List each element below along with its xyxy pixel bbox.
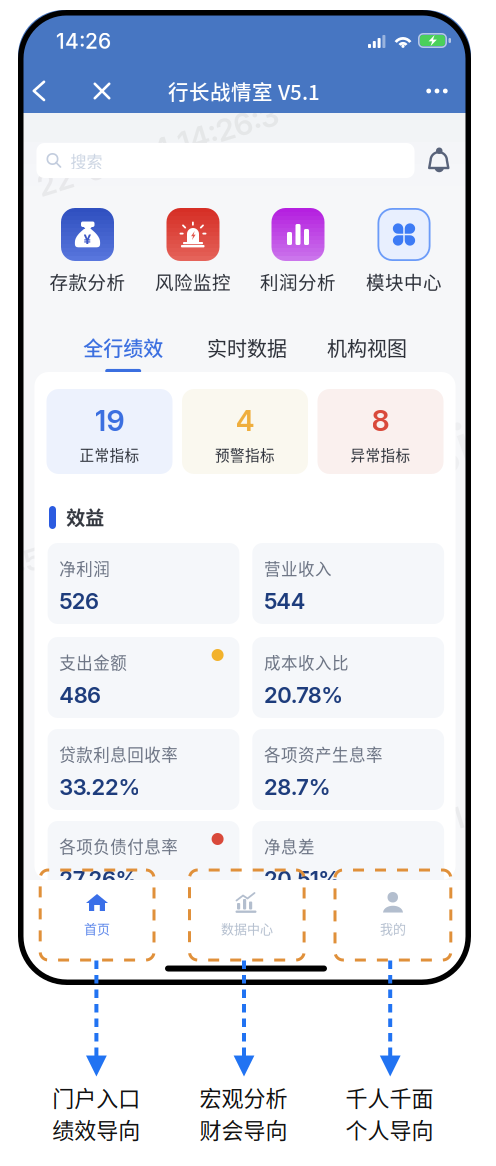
staticText: 贷款利息回收率 — [59, 742, 178, 766]
staticText: 效益 — [66, 503, 104, 531]
staticText: 成本收入比 — [264, 650, 349, 674]
button[interactable]: More — [18, 10, 471, 985]
button[interactable]: 各项资产生息率 — [18, 10, 471, 985]
staticText: fusion 2 — [364, 405, 496, 475]
button[interactable]: 全行绩效 — [18, 10, 471, 985]
button[interactable]: 8 — [18, 10, 471, 985]
staticText: 行长战情室 V5.1 — [168, 76, 320, 106]
staticText: 预警指标 — [215, 444, 275, 465]
button[interactable]: Close — [18, 10, 471, 985]
staticText: 8 — [371, 403, 389, 438]
staticText: 利润分析 — [260, 268, 336, 295]
button[interactable]: 各项负债付息率 — [18, 10, 471, 985]
staticText: 营业收入 — [264, 556, 332, 580]
staticText: ¥ — [83, 231, 91, 248]
staticText: 4 — [235, 403, 254, 438]
button[interactable]: Back — [18, 10, 471, 985]
staticText: 486 — [59, 682, 101, 708]
staticText: 净利润 — [59, 556, 110, 580]
button[interactable]: 支出金额 — [18, 10, 471, 985]
button[interactable]: 机构视图 — [18, 10, 471, 985]
staticText: 544 — [264, 588, 306, 614]
staticText: 首页 — [84, 919, 110, 937]
staticText: 22-05-04 14:26 — [306, 812, 496, 848]
staticText: 净息差 — [264, 834, 315, 858]
button[interactable]: 数据中心 — [18, 10, 471, 985]
staticText: 异常指标 — [350, 444, 410, 465]
button[interactable]: 营业收入 — [18, 10, 471, 985]
button[interactable]: 19 — [18, 10, 471, 985]
button[interactable]: 我的 — [18, 10, 471, 985]
button[interactable]: 首页 — [18, 10, 471, 985]
staticText: 支出金额 — [59, 650, 127, 674]
button[interactable]: 搜索 — [18, 10, 471, 985]
staticText: 33.22% — [59, 774, 140, 800]
staticText: 28.7% — [264, 774, 331, 800]
staticText: 各项资产生息率 — [264, 742, 383, 766]
staticText: 宏观分析 — [199, 1081, 287, 1113]
staticText: 搜索 — [70, 149, 102, 172]
button[interactable]: 净息差 — [18, 10, 471, 985]
button[interactable]: 贷款利息回收率 — [18, 10, 471, 985]
staticText: 存款分析 — [49, 268, 125, 295]
button[interactable]: 净利润 — [18, 10, 471, 985]
staticText: 27.26% — [59, 866, 137, 892]
button[interactable]: 4 — [18, 10, 471, 985]
button[interactable]: 实时数据 — [18, 10, 471, 985]
staticText: 22-05-04 14:26:3 — [32, 132, 283, 168]
staticText: 各项负债付息率 — [59, 834, 178, 858]
staticText: 门户入口 — [52, 1081, 140, 1113]
staticText: 14:26:51 — [0, 552, 55, 588]
button[interactable]: 成本收入比 — [18, 10, 471, 985]
button[interactable]: ¥ — [18, 10, 471, 985]
staticText: 20.78% — [264, 682, 343, 708]
staticText: 全行绩效 — [83, 333, 163, 362]
staticText: 20.51% — [264, 866, 340, 892]
staticText: 实时数据 — [207, 333, 287, 362]
staticText: 19 — [94, 403, 124, 438]
staticText: 模块中心 — [366, 268, 442, 295]
staticText: 机构视图 — [327, 333, 407, 362]
staticText: 千人千面 — [346, 1081, 434, 1113]
button[interactable]: 模块中心 — [18, 10, 471, 985]
button[interactable]: Notifications — [18, 10, 471, 985]
staticText: 绩效导向 — [52, 1113, 140, 1145]
staticText: 数据中心 — [221, 919, 273, 937]
button[interactable]: 利润分析 — [18, 10, 471, 985]
staticText: 14:26 — [56, 28, 111, 54]
staticText: 个人导向 — [346, 1113, 434, 1145]
staticText: 526 — [59, 588, 99, 614]
staticText: 风险监控 — [155, 268, 231, 295]
staticText: 财会导向 — [199, 1113, 287, 1145]
button[interactable]: 风险监控 — [18, 10, 471, 985]
staticText: 正常指标 — [79, 444, 139, 465]
staticText: 我的 — [380, 919, 406, 937]
